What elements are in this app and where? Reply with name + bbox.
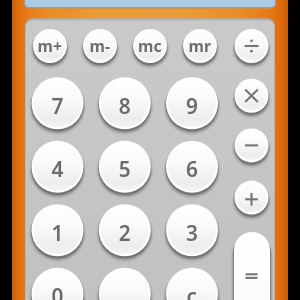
button[interactable]: 8 xyxy=(99,77,151,129)
button[interactable]: Decimal point xyxy=(99,268,151,300)
button[interactable]: 5 xyxy=(99,141,151,193)
button[interactable]: 3 xyxy=(166,204,218,256)
button[interactable]: 4 xyxy=(32,141,84,193)
button[interactable]: 6 xyxy=(166,141,218,193)
button[interactable]: m- xyxy=(83,29,117,63)
button[interactable]: 0 xyxy=(32,268,84,300)
button[interactable]: Divide xyxy=(235,29,269,63)
button[interactable]: 2 xyxy=(99,204,151,256)
button[interactable]: 9 xyxy=(166,77,218,129)
button[interactable]: Equals xyxy=(234,232,270,300)
button[interactable]: mr xyxy=(183,29,217,63)
button[interactable]: Subtract xyxy=(235,128,269,162)
button[interactable]: 7 xyxy=(32,77,84,129)
button[interactable]: mc xyxy=(133,29,167,63)
button[interactable]: Multiply xyxy=(235,79,269,113)
button[interactable]: m+ xyxy=(33,29,67,63)
button[interactable]: Add xyxy=(235,181,269,215)
button[interactable]: Clear xyxy=(166,268,218,300)
button[interactable]: 1 xyxy=(32,204,84,256)
